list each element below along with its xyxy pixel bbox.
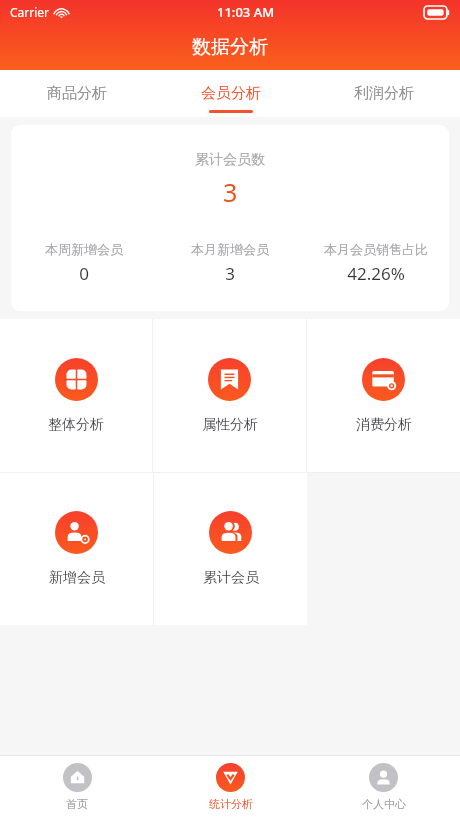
button[interactable]: 消费分析 [307,319,460,472]
staticText: 个人中心 [362,797,406,811]
button[interactable]: 首页 [0,756,154,818]
staticText: 利润分析 [354,84,414,103]
button[interactable]: 商品分析 [0,70,154,117]
button[interactable]: 新增会员 [0,473,153,625]
staticText: 统计分析 [209,797,253,811]
staticText: 11:03 AM [217,3,275,21]
staticText: 累计会员 [203,569,259,587]
staticText: 累计会员数 [195,151,265,169]
button[interactable]: 累计会员 [154,473,307,625]
button[interactable]: 统计分析 [154,756,307,818]
button[interactable]: 个人中心 [307,756,460,818]
button[interactable]: 属性分析 [153,319,306,472]
staticText: 会员分析 [201,84,261,103]
staticText: 本月会员销售占比 [324,241,428,257]
staticText: 本月新增会员 [191,241,269,257]
staticText: 本周新增会员 [45,241,123,257]
staticText: 消费分析 [356,416,412,434]
staticText: Carrier [10,4,50,20]
staticText: 3 [225,262,235,285]
staticText: 属性分析 [202,416,258,434]
staticText: 0 [79,262,89,285]
staticText: 42.26% [347,262,405,285]
button[interactable]: 利润分析 [307,70,460,117]
button[interactable]: 整体分析 [0,319,152,472]
staticText: 首页 [66,797,88,811]
staticText: 3 [223,175,238,209]
staticText: 新增会员 [49,569,105,587]
button[interactable]: 会员分析 [154,70,307,117]
staticText: 整体分析 [48,416,104,434]
staticText: 数据分析 [192,35,268,59]
staticText: 商品分析 [47,84,107,103]
